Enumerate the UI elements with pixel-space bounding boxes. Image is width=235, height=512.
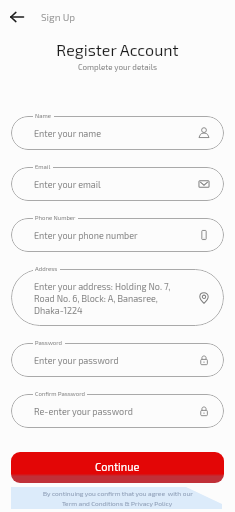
staticText: Confirm Password [35, 390, 85, 397]
staticText: Sign Up [41, 11, 76, 23]
staticText: Re-enter your password [34, 406, 198, 417]
button[interactable]: Enter your password [11, 343, 224, 377]
staticText: Enter your password [34, 355, 198, 366]
staticText: Phone Number [35, 214, 76, 221]
staticText: Complete your details [0, 62, 235, 72]
button[interactable]: Back [0, 0, 34, 34]
staticText: Enter your address: Holding No. 7, Road … [34, 281, 198, 315]
staticText: Enter your email [34, 179, 198, 190]
staticText: Continue [95, 460, 140, 473]
button[interactable]: Enter your name [11, 116, 224, 150]
button[interactable]: Enter your email [11, 167, 224, 201]
button[interactable]: Continue [11, 452, 224, 483]
staticText: Name [35, 112, 52, 119]
staticText: Term and Conditions & Privacy Policy [62, 499, 173, 507]
staticText: By continuing you confirm that you agree… [43, 489, 193, 497]
staticText: Enter your name [34, 128, 198, 139]
staticText: Enter your phone number [34, 230, 198, 241]
staticText: Address [35, 265, 58, 272]
button[interactable]: Enter your phone number [11, 218, 224, 252]
button[interactable]: Re-enter your password [11, 394, 224, 428]
staticText: Password [35, 339, 63, 346]
button[interactable]: Enter your address: Holding No. 7, Road … [11, 269, 224, 326]
staticText: Email [35, 163, 51, 170]
staticText: Register Account [0, 40, 235, 59]
